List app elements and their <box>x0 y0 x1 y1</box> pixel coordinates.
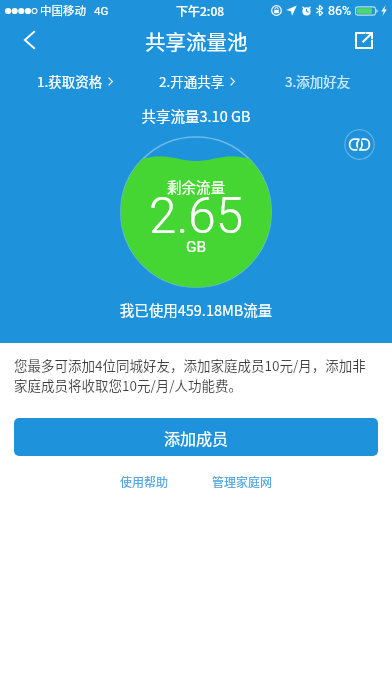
staticText: 我已使用459.18MB流量 <box>0 299 392 320</box>
button[interactable]: Link <box>344 129 375 160</box>
staticText: 您最多可添加4位同城好友，添加家庭成员10元/月，添加非家庭成员将收取您10元/… <box>14 355 378 395</box>
button[interactable]: 3.添加好友 <box>257 68 378 94</box>
staticText: 4G <box>94 4 109 17</box>
staticText: 86% <box>328 3 352 18</box>
staticText: 中国移动 <box>40 2 86 19</box>
staticText: 剩余流量 <box>167 176 225 197</box>
staticText: 共享流量池 <box>145 26 248 56</box>
staticText: 使用帮助 <box>120 473 169 490</box>
button[interactable]: 2.开通共享 <box>136 68 257 94</box>
button[interactable]: 使用帮助 <box>112 467 177 496</box>
staticText: 管理家庭网 <box>212 473 273 490</box>
staticText: 共享流量3.10 GB <box>0 105 392 126</box>
staticText: 2.65 <box>149 187 244 245</box>
staticText: 2.开通共享 <box>159 71 225 91</box>
staticText: 添加成员 <box>164 426 229 449</box>
button[interactable]: Share <box>336 20 392 64</box>
button[interactable]: 1.获取资格 <box>14 68 136 94</box>
staticText: GB <box>186 238 207 256</box>
button[interactable]: 管理家庭网 <box>204 467 281 496</box>
button[interactable]: 添加成员 <box>14 418 378 456</box>
staticText: 下午2:08 <box>176 2 225 19</box>
staticText: 1.获取资格 <box>37 71 103 91</box>
button[interactable]: Back <box>0 20 56 64</box>
staticText: 3.添加好友 <box>285 71 351 91</box>
